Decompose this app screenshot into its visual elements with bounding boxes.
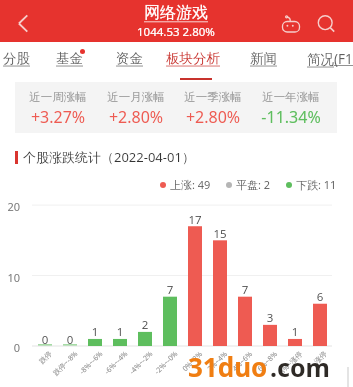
staticText: 1044.53 2.80% [137, 24, 215, 40]
button[interactable]: 新闻 [237, 42, 289, 80]
staticText: -11.34% [251, 106, 331, 128]
staticText: 下跌: 11 [296, 177, 337, 192]
staticText: +2.80% [96, 106, 176, 128]
staticText: 个股涨跌统计（2022-04-01） [23, 148, 195, 166]
button[interactable]: Back [0, 0, 42, 42]
staticText: 7 [233, 282, 257, 298]
staticText: .com [270, 350, 330, 384]
staticText: 分股 [3, 50, 30, 67]
button[interactable]: 分股 [0, 42, 42, 80]
staticText: 10 [0, 270, 20, 285]
staticText: 平盘: 2 [236, 177, 271, 192]
staticText: 资金 [116, 50, 143, 67]
staticText: 近一月涨幅 [96, 90, 176, 104]
button[interactable]: 资金 [103, 42, 155, 80]
staticText: 1 [108, 324, 132, 340]
staticText: 31duo [188, 349, 268, 384]
staticText: 1 [283, 324, 307, 340]
staticText: 0 [33, 332, 57, 348]
staticText: 17 [183, 212, 207, 228]
staticText: 新闻 [250, 50, 277, 67]
staticText: 2 [133, 317, 157, 333]
staticText: 0 [58, 332, 82, 348]
staticText: 6 [308, 289, 332, 305]
staticText: 3 [258, 310, 282, 326]
button[interactable]: AI assistant [275, 6, 307, 38]
button[interactable]: 基金 [42, 42, 96, 80]
button[interactable]: 板块分析 [163, 42, 223, 80]
staticText: 简况(F10) [307, 50, 353, 68]
staticText: 20 [0, 199, 20, 214]
button[interactable]: 简况(F10) [299, 42, 353, 80]
staticText: +2.80% [173, 106, 253, 128]
staticText: 近一年涨幅 [251, 90, 331, 104]
staticText: 1 [83, 324, 107, 340]
staticText: 近一季涨幅 [173, 90, 253, 104]
staticText: 7 [158, 282, 182, 298]
staticText: 0 [0, 340, 20, 355]
staticText: 网络游戏 [144, 3, 208, 23]
button[interactable]: Search [310, 5, 342, 37]
staticText: 近一周涨幅 [18, 90, 98, 104]
staticText: 15 [208, 226, 232, 242]
staticText: +3.27% [18, 106, 98, 128]
staticText: 板块分析 [166, 50, 220, 67]
staticText: 基金 [56, 50, 83, 67]
staticText: 上涨: 49 [170, 177, 211, 192]
